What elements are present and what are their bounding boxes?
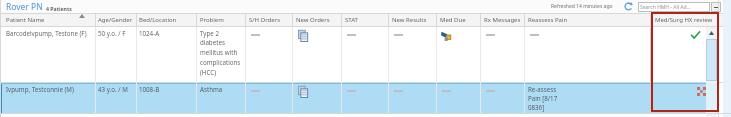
staticText: Age/Gender [98, 16, 133, 24]
button[interactable]: Refresh [624, 2, 633, 11]
button[interactable]: Age/Gender [98, 13, 133, 26]
staticText: 43 y.o. / M [98, 85, 128, 93]
staticText: STAT [345, 16, 358, 24]
button[interactable]: STAT [345, 13, 358, 26]
button[interactable]: Rover PN [6, 1, 72, 13]
staticText: Reassess Pain [528, 16, 568, 24]
staticText: Bed/Location [139, 16, 177, 24]
staticText: Re-assess Pain [8/17 0836] [528, 85, 558, 112]
staticText: Problem [200, 16, 224, 24]
button[interactable]: Search options [711, 2, 721, 12]
button[interactable]: Problem [200, 13, 224, 26]
staticText: Med Due [440, 16, 466, 24]
staticText: Patient Name [6, 16, 45, 24]
staticText: New Orders [296, 16, 330, 24]
staticText: Rover PN [6, 1, 43, 13]
button[interactable]: New Orders [296, 13, 330, 26]
button[interactable]: New Results [392, 13, 427, 26]
staticText: 1008-B [139, 85, 160, 93]
button[interactable]: Scrollbar thumb [706, 39, 717, 81]
button[interactable]: Med Due [440, 13, 466, 26]
button[interactable]: Search HMH - All Ad... [638, 2, 710, 12]
other: New order document [298, 30, 309, 42]
staticText: Barcodeivpump, Testone (F) [6, 29, 87, 37]
staticText: Type 2 diabetes mellitus with complicati… [200, 29, 241, 77]
staticText: 1024-A [139, 29, 160, 37]
staticText: Refreshed 14 minutes ago [551, 3, 613, 10]
button[interactable] [0, 83, 718, 113]
button[interactable]: Patient Name [6, 13, 45, 26]
button[interactable]: Bed/Location [139, 13, 177, 26]
other: New order document [298, 86, 309, 98]
staticText: Rx Messages [484, 16, 521, 24]
button[interactable] [0, 27, 731, 83]
button[interactable]: Reassess Pain [528, 13, 568, 26]
staticText: 50 y.o. / F [98, 29, 126, 37]
button[interactable]: S/H Orders [249, 13, 281, 26]
staticText: Med/Surg HX review [655, 16, 713, 24]
staticText: Ivpump, Testconnie (M) [6, 85, 74, 93]
staticText: 4 Patients [46, 5, 72, 12]
other: Medication due [441, 31, 453, 42]
other: Missing image [697, 87, 706, 96]
button[interactable]: Scroll up [706, 27, 717, 38]
button[interactable]: Med/Surg HX review [655, 13, 713, 26]
staticText: New Results [392, 16, 427, 24]
button[interactable]: Rx Messages [484, 13, 521, 26]
staticText: Search HMH - All Ad... [640, 4, 691, 11]
other: Reviewed [691, 31, 700, 39]
staticText: S/H Orders [249, 16, 281, 24]
staticText: Asthma [200, 85, 223, 93]
